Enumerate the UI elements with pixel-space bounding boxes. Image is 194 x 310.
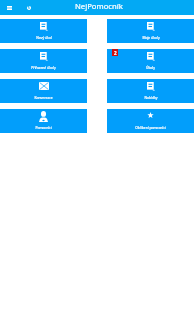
staticText: Oblíbení pomocníci (135, 125, 166, 129)
button[interactable]: Pomocníci (0, 109, 87, 133)
button[interactable]: Nabídky (107, 79, 194, 103)
button[interactable]: Refresh (19, 0, 38, 15)
button[interactable]: Přiřazené úkoly (0, 49, 87, 73)
button[interactable]: Moje úkoly (107, 19, 194, 43)
staticText: Konverzace (34, 95, 53, 99)
staticText: Úkoly (146, 65, 155, 69)
button[interactable]: Úkoly (107, 49, 194, 73)
staticText: Nový úkol (36, 35, 52, 39)
staticText: Nabídky (144, 95, 158, 99)
staticText: Moje úkoly (142, 35, 160, 39)
staticText: 2 (114, 50, 117, 56)
button[interactable]: Konverzace (0, 79, 87, 103)
staticText: NejPomocník (75, 1, 123, 11)
staticText: Přiřazené úkoly (31, 65, 56, 69)
button[interactable]: Open navigation menu (0, 0, 19, 15)
button[interactable]: Oblíbení pomocníci (107, 109, 194, 133)
button[interactable]: Nový úkol (0, 19, 87, 43)
staticText: Pomocníci (35, 125, 52, 129)
